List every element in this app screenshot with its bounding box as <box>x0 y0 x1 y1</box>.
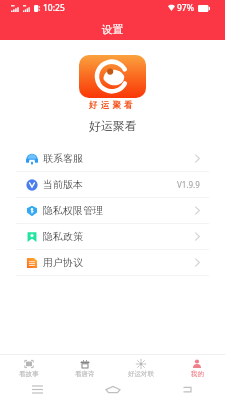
staticText: 联系客服 <box>43 152 83 165</box>
staticText: 10:25 <box>43 2 65 14</box>
staticText: 好运对联 <box>128 370 154 378</box>
staticText: 用户协议 <box>43 256 83 269</box>
staticText: 当前版本 <box>43 178 83 191</box>
staticText: 我的 <box>191 370 204 378</box>
staticText: V1.9.9 <box>177 179 200 190</box>
staticText: 看唐诗 <box>75 370 95 378</box>
button[interactable]: 联系客服 <box>0 146 225 172</box>
button[interactable]: Recents <box>0 379 75 400</box>
button[interactable]: 看唐诗 <box>57 355 113 379</box>
button[interactable]: 当前版本 <box>0 172 225 198</box>
button[interactable]: 我的 <box>169 355 225 379</box>
button[interactable]: 隐私权限管理 <box>0 198 225 224</box>
button[interactable]: 用户协议 <box>0 250 225 276</box>
staticText: 隐私政策 <box>43 230 83 243</box>
staticText: 好运聚看 <box>89 100 136 111</box>
button[interactable]: 看故事 <box>0 355 57 379</box>
staticText: 设置 <box>102 23 123 36</box>
staticText: 隐私权限管理 <box>43 204 103 217</box>
staticText: 97% <box>177 2 194 14</box>
button[interactable]: Back <box>150 379 225 400</box>
button[interactable]: 好运对联 <box>113 355 169 379</box>
staticText: 看故事 <box>19 370 39 378</box>
staticText: 好运聚看 <box>89 118 137 133</box>
button[interactable]: Home <box>75 379 150 400</box>
button[interactable]: 隐私政策 <box>0 224 225 250</box>
